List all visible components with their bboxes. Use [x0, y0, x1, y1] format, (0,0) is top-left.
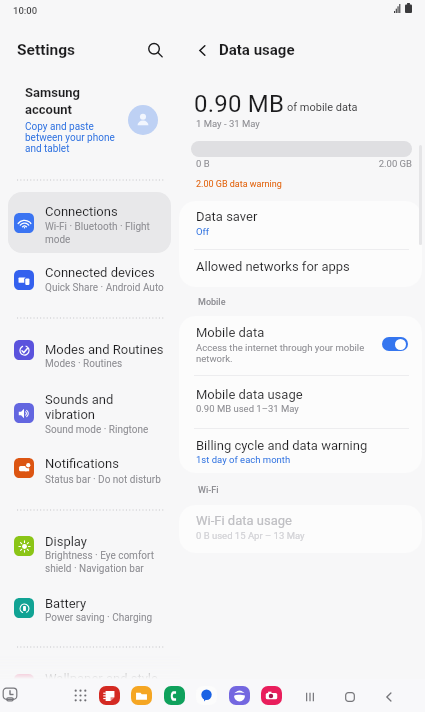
- staticText: 0 B used 15 Apr – 13 May: [196, 530, 305, 541]
- button[interactable]: [179, 249, 422, 287]
- button[interactable]: App 6: [261, 686, 282, 705]
- button[interactable]: App 3: [164, 686, 185, 705]
- staticText: Display: [45, 534, 87, 549]
- button[interactable]: [8, 192, 171, 253]
- staticText: Access the internet through your mobile: [196, 342, 365, 353]
- button[interactable]: Back: [188, 36, 216, 64]
- button[interactable]: [8, 664, 171, 679]
- button[interactable]: [179, 316, 422, 375]
- staticText: mode: [45, 234, 71, 246]
- staticText: 2.00 GB data warning: [196, 179, 282, 190]
- staticText: account: [25, 102, 72, 117]
- staticText: 1st day of each month: [196, 454, 291, 465]
- button[interactable]: App 5: [229, 686, 250, 705]
- staticText: Notifications: [45, 456, 119, 471]
- staticText: Modes and Routines: [45, 342, 164, 357]
- staticText: 2.00 GB: [330, 158, 412, 169]
- staticText: Wi-Fi data usage: [196, 513, 292, 528]
- button[interactable]: [179, 505, 422, 553]
- staticText: vibration: [45, 407, 95, 422]
- staticText: Off: [196, 226, 210, 237]
- button[interactable]: App 1: [99, 686, 120, 705]
- staticText: Data usage: [219, 41, 295, 59]
- staticText: Data saver: [196, 209, 258, 224]
- staticText: and tablet: [25, 143, 70, 155]
- staticText: 1 May - 31 May: [196, 118, 260, 129]
- button[interactable]: Apps: [74, 689, 87, 702]
- button[interactable]: [8, 80, 171, 160]
- staticText: 0.90 MB: [194, 90, 285, 118]
- staticText: Billing cycle and data warning: [196, 438, 368, 453]
- button[interactable]: [8, 386, 171, 446]
- button[interactable]: Home: [341, 688, 359, 706]
- staticText: Modes · Routines: [45, 358, 123, 370]
- staticText: Wallpaper and style: [45, 671, 158, 679]
- staticText: 0 B: [196, 158, 210, 169]
- staticText: between your phone: [25, 132, 115, 144]
- button[interactable]: Recent screens: [2, 687, 18, 702]
- staticText: of mobile data: [287, 101, 358, 114]
- staticText: Mobile data: [196, 325, 265, 340]
- staticText: Mobile data usage: [196, 387, 303, 402]
- button[interactable]: [179, 201, 422, 248]
- button[interactable]: Data usage: [213, 36, 301, 64]
- button[interactable]: [8, 590, 171, 638]
- button[interactable]: App 2: [131, 686, 152, 705]
- button[interactable]: [8, 524, 171, 584]
- staticText: Copy and paste: [25, 121, 94, 133]
- button[interactable]: Recents: [301, 688, 319, 706]
- staticText: Wi-Fi · Bluetooth · Flight: [45, 221, 150, 233]
- button[interactable]: Mobile data toggle: [382, 337, 408, 351]
- button[interactable]: App 4: [196, 686, 217, 705]
- button[interactable]: Search: [140, 35, 170, 65]
- staticText: Settings: [17, 41, 76, 59]
- staticText: Connected devices: [45, 265, 155, 280]
- staticText: Quick Share · Android Auto: [45, 282, 164, 294]
- staticText: Battery: [45, 596, 87, 611]
- button[interactable]: [179, 428, 422, 473]
- staticText: 10:00: [13, 5, 38, 16]
- staticText: network.: [196, 353, 233, 364]
- staticText: Power saving · Charging: [45, 612, 153, 624]
- button[interactable]: [179, 375, 422, 428]
- staticText: shield · Navigation bar: [45, 563, 144, 575]
- button[interactable]: [8, 258, 171, 306]
- staticText: Brightness · Eye comfort: [45, 550, 154, 562]
- button[interactable]: [8, 330, 171, 378]
- staticText: Connections: [45, 204, 118, 219]
- staticText: Mobile: [198, 297, 226, 308]
- staticText: Sound mode · Ringtone: [45, 424, 149, 436]
- button[interactable]: [8, 452, 171, 500]
- staticText: 0.90 MB used 1–31 May: [196, 403, 299, 414]
- staticText: Wi-Fi: [198, 485, 219, 496]
- button[interactable]: Back: [380, 688, 398, 706]
- staticText: Sounds and: [45, 392, 114, 407]
- staticText: Status bar · Do not disturb: [45, 474, 161, 486]
- staticText: Samsung: [25, 85, 80, 100]
- button[interactable]: Settings: [11, 36, 82, 64]
- staticText: Allowed networks for apps: [196, 259, 350, 274]
